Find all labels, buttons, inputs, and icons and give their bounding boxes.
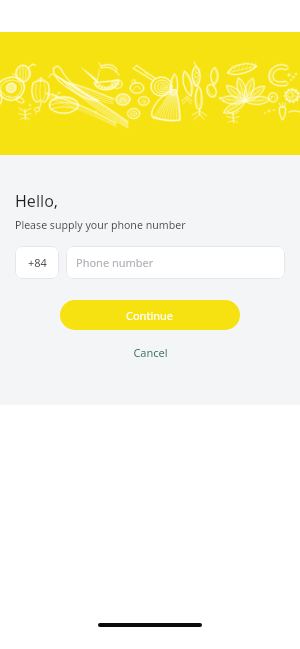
staticText: Phone number [76, 255, 154, 270]
staticText: Hello, [15, 190, 59, 212]
staticText: Continue [126, 308, 174, 323]
staticText: Cancel [133, 345, 168, 360]
staticText: Please supply your phone number [15, 218, 186, 232]
button[interactable]: Continue [60, 300, 240, 330]
button[interactable]: Phone number [66, 246, 285, 279]
staticText: +84 [28, 255, 47, 270]
button[interactable]: Cancel [15, 342, 285, 362]
button[interactable]: +84 [15, 246, 59, 279]
